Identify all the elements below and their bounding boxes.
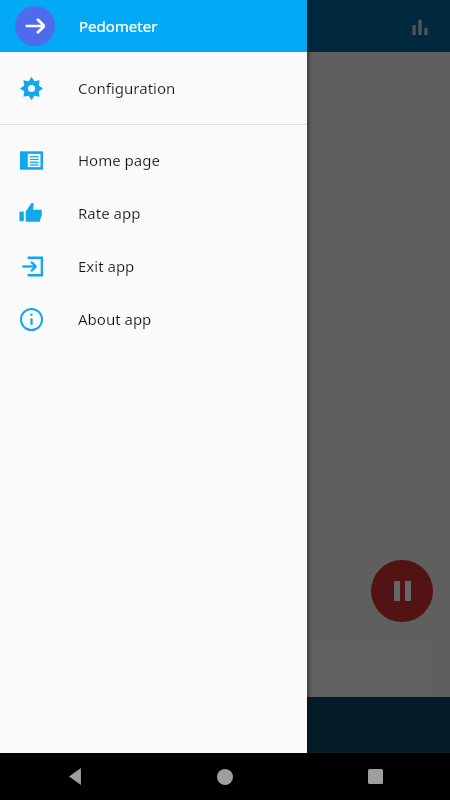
staticText: Exit app (78, 256, 135, 276)
button[interactable]: Exit app (0, 239, 307, 292)
button[interactable]: Configuration (0, 52, 307, 124)
button[interactable]: Pause (371, 560, 433, 622)
button[interactable]: Rate app (0, 186, 307, 239)
button[interactable]: Statistics (404, 10, 436, 42)
button[interactable]: 0.005 (0, 697, 450, 753)
button[interactable]: Pedometer (0, 0, 307, 52)
staticText: About app (78, 309, 152, 329)
staticText: Configuration (78, 78, 176, 98)
staticText: Home page (78, 150, 160, 170)
button[interactable]: Back (0, 753, 150, 800)
button[interactable]: Home page (0, 133, 307, 186)
button[interactable]: Recent apps (300, 753, 450, 800)
button[interactable]: About app (0, 292, 307, 345)
staticText: Rate app (78, 203, 141, 223)
button[interactable]: Home (150, 753, 300, 800)
staticText: Pedometer (79, 16, 158, 36)
